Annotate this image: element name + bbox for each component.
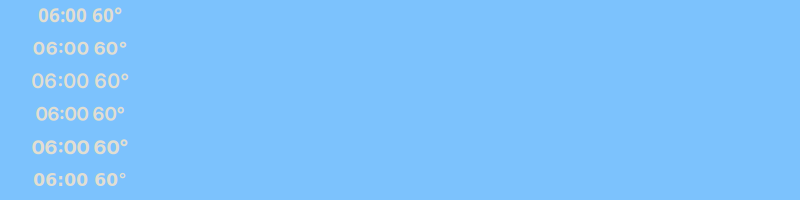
staticText: 06:00 60° <box>32 37 127 59</box>
staticText: 06:00 60° <box>35 103 124 125</box>
staticText: 06:00 60° <box>33 170 127 190</box>
staticText: 06:00 60° <box>31 69 129 93</box>
staticText: 06:00 60° <box>38 3 122 27</box>
staticText: 06:00 60° <box>31 135 128 159</box>
